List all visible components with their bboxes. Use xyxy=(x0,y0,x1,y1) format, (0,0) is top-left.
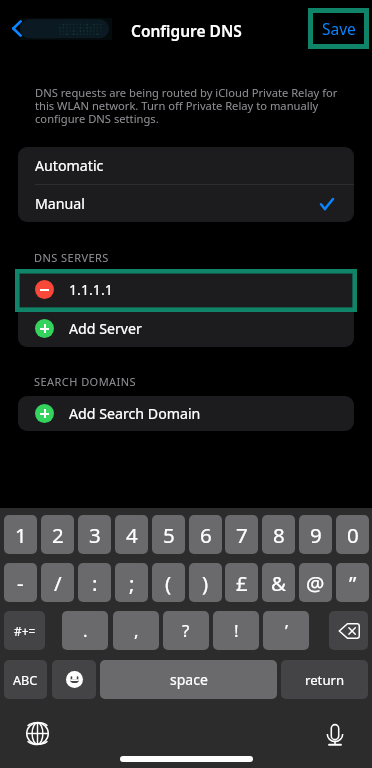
staticText: , xyxy=(134,619,139,642)
button[interactable]: ABC xyxy=(4,660,47,699)
staticText: ( xyxy=(165,569,172,597)
button[interactable]: Save xyxy=(313,13,364,44)
button[interactable]: ! xyxy=(213,611,259,650)
staticText: 3 xyxy=(89,521,101,549)
staticText: ; xyxy=(129,569,135,597)
staticText: . xyxy=(83,619,88,642)
button[interactable]: Manual xyxy=(18,185,354,222)
staticText: 4 xyxy=(126,521,138,549)
staticText: 2 xyxy=(52,521,64,549)
button[interactable]: . xyxy=(62,611,108,650)
button[interactable]: Change keyboard xyxy=(22,718,52,748)
button[interactable]: 5 xyxy=(152,515,185,554)
button[interactable]: : xyxy=(78,563,111,602)
button[interactable]: ” xyxy=(336,563,369,602)
button[interactable]: 1.1.1.1 xyxy=(18,270,354,309)
button[interactable]: Add Search Domain xyxy=(18,396,354,431)
staticText: & xyxy=(271,569,287,597)
button[interactable]: Emoji xyxy=(52,660,96,699)
staticText: @ xyxy=(306,569,325,597)
staticText: ’ xyxy=(285,619,288,642)
staticText: ABC xyxy=(13,671,38,688)
staticText: : xyxy=(92,569,98,597)
button[interactable]: #+= xyxy=(4,611,45,650)
button[interactable]: ? xyxy=(163,611,209,650)
staticText: #+= xyxy=(14,623,36,639)
staticText: - xyxy=(17,569,24,597)
staticText: Save xyxy=(322,18,356,39)
staticText: DNS requests are being routed by iCloud … xyxy=(35,85,339,126)
button[interactable]: Add Server xyxy=(18,309,354,347)
staticText: Add Search Domain xyxy=(69,404,201,423)
staticText: 5 xyxy=(163,521,175,549)
button[interactable]: & xyxy=(262,563,295,602)
button[interactable]: 4 xyxy=(115,515,148,554)
button[interactable]: Dictation xyxy=(320,718,350,748)
button[interactable]: - xyxy=(4,563,37,602)
staticText: Automatic xyxy=(35,156,104,175)
button[interactable]: £ xyxy=(225,563,258,602)
button[interactable]: ’ xyxy=(263,611,309,650)
staticText: ” xyxy=(349,569,357,597)
button[interactable]: ( xyxy=(152,563,185,602)
button[interactable]: 8 xyxy=(262,515,295,554)
button[interactable]: 2 xyxy=(41,515,74,554)
staticText: Configure DNS xyxy=(131,20,242,41)
button[interactable]: , xyxy=(113,611,159,650)
button[interactable]: 7 xyxy=(225,515,258,554)
button[interactable]: Backspace xyxy=(329,611,368,650)
staticText: ) xyxy=(202,569,209,597)
button[interactable]: 1 xyxy=(4,515,37,554)
button[interactable]: Back xyxy=(6,14,118,44)
staticText: £ xyxy=(236,569,248,597)
staticText: / xyxy=(54,569,62,597)
staticText: Manual xyxy=(35,194,85,213)
staticText: 7 xyxy=(236,521,248,549)
staticText: Add Server xyxy=(69,319,142,338)
staticText: SEARCH DOMAINS xyxy=(34,374,137,389)
staticText: return xyxy=(305,671,345,689)
staticText: 1.1.1.1 xyxy=(69,280,113,299)
staticText: ? xyxy=(182,619,190,642)
button[interactable]: return xyxy=(281,660,368,699)
staticText: 6 xyxy=(200,521,212,549)
staticText: DNS SERVERS xyxy=(34,250,109,265)
staticText: 9 xyxy=(310,521,322,549)
staticText: 0 xyxy=(347,521,359,549)
button[interactable]: @ xyxy=(299,563,332,602)
button[interactable]: ; xyxy=(115,563,148,602)
button[interactable]: 6 xyxy=(189,515,222,554)
staticText: ! xyxy=(234,619,239,642)
staticText: 1 xyxy=(15,521,27,549)
button[interactable]: / xyxy=(41,563,74,602)
button[interactable]: space xyxy=(100,660,277,699)
staticText: space xyxy=(170,670,208,689)
button[interactable]: Automatic xyxy=(18,147,354,184)
staticText: 8 xyxy=(273,521,285,549)
button[interactable]: 3 xyxy=(78,515,111,554)
button[interactable]: ) xyxy=(189,563,222,602)
button[interactable]: 9 xyxy=(299,515,332,554)
button[interactable]: 0 xyxy=(336,515,369,554)
